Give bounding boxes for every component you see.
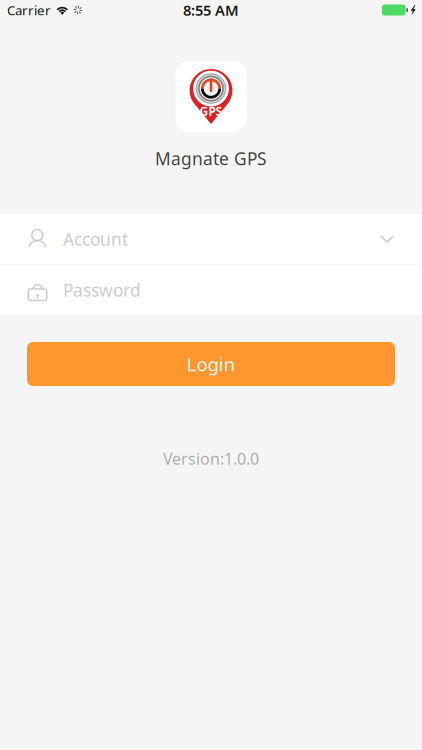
button[interactable]: Choose saved account [359,214,422,264]
staticText: GPS [199,103,222,119]
staticText: 8:55 AM [183,0,239,20]
staticText: Carrier [7,1,51,19]
button[interactable]: Login [27,342,395,386]
staticText: Account [63,227,128,250]
staticText: Magnate GPS [155,147,267,170]
staticText: Version:1.0.0 [163,448,259,469]
staticText: Login [186,352,235,376]
staticText: Password [63,278,141,301]
